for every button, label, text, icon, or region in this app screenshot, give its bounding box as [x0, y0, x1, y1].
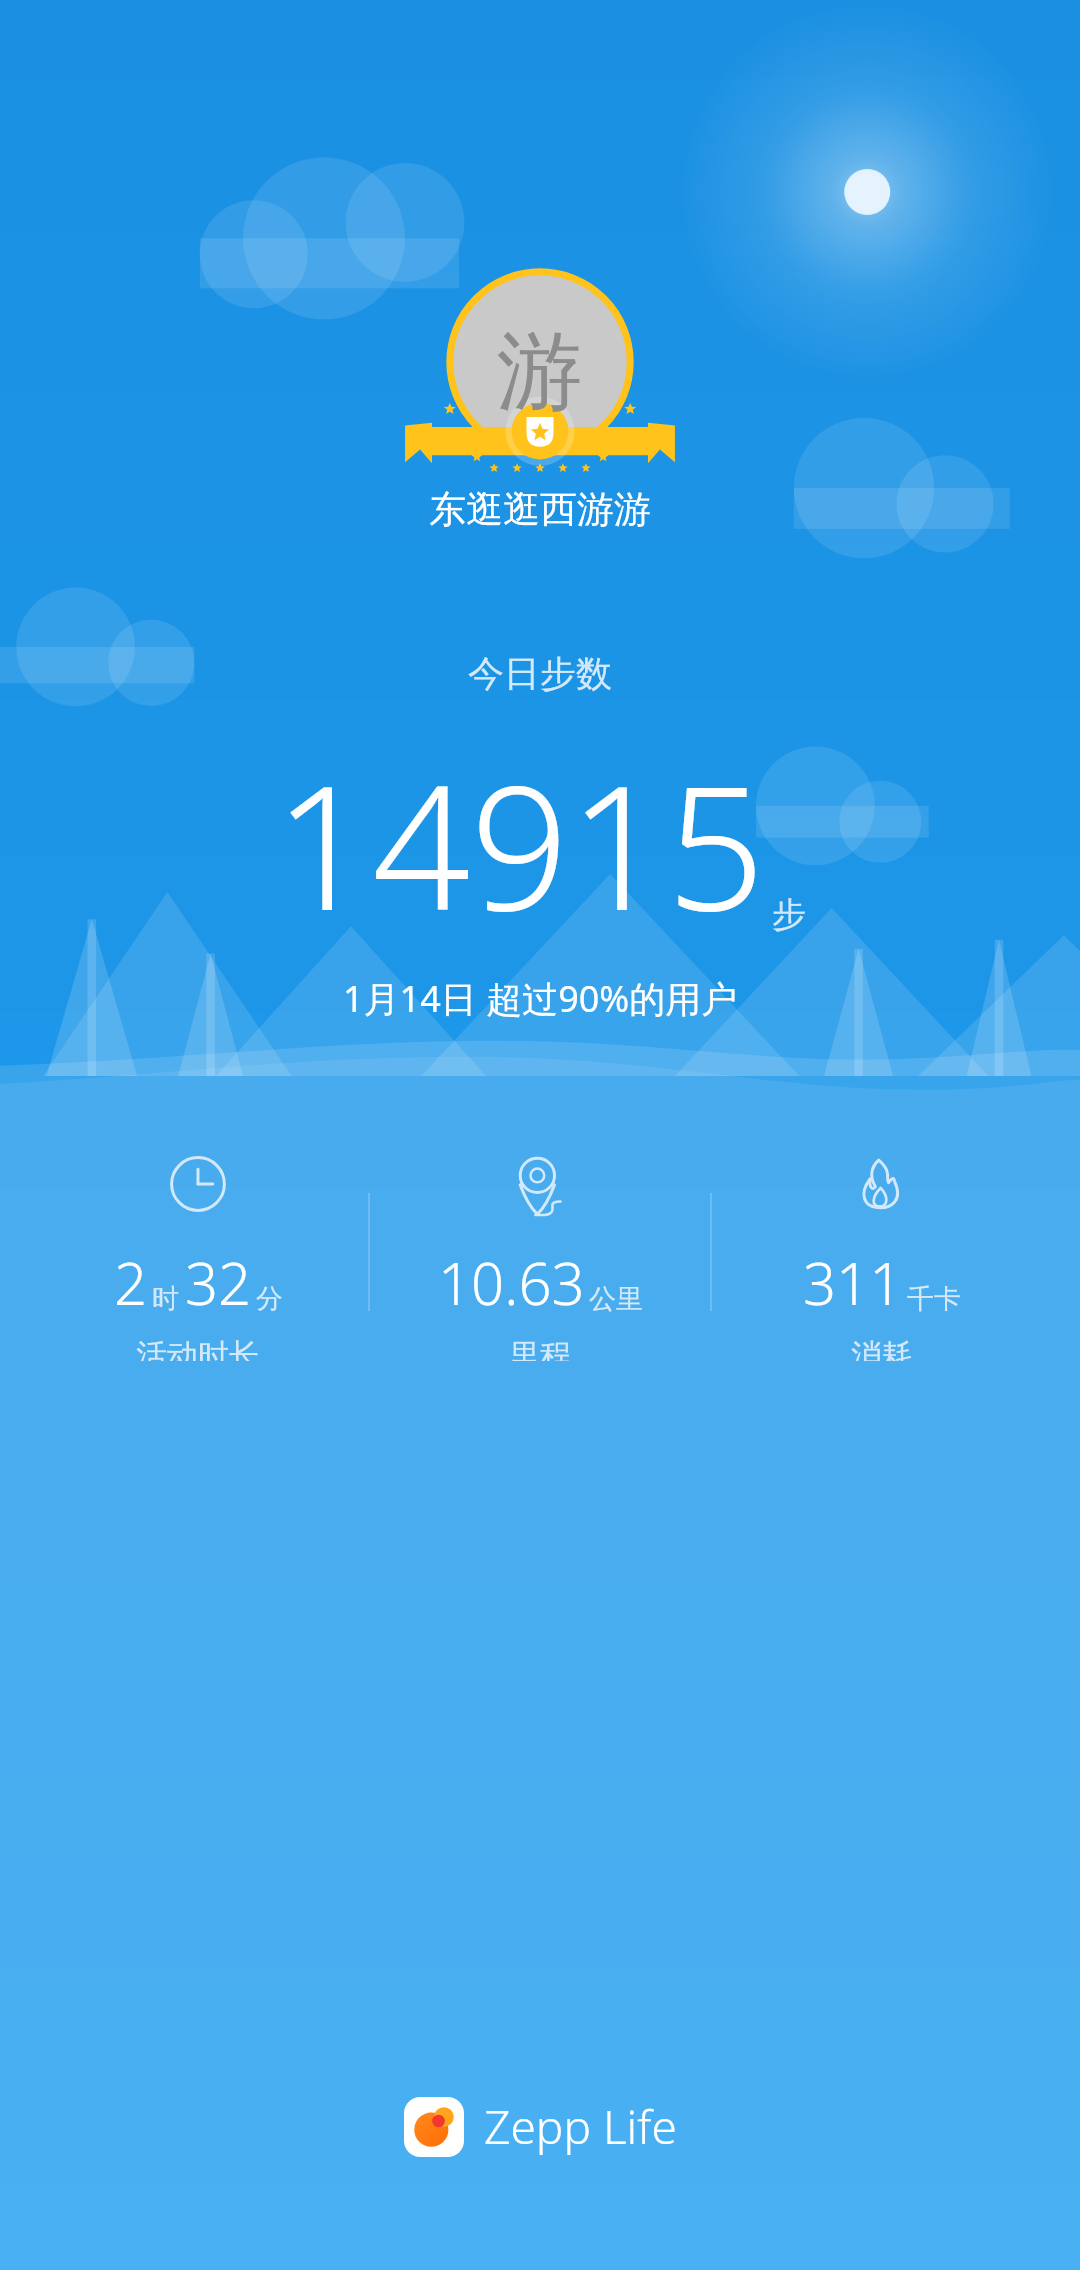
staticText: 游 [497, 318, 583, 426]
other: Zepp Life app icon [404, 2097, 464, 2157]
staticText: Zepp Life [484, 2095, 677, 2158]
button[interactable]: Achievement badge 东逛逛西游游 [405, 272, 675, 472]
staticText: 1月14日 超过90%的用户 [343, 974, 738, 1023]
staticText: 公里 [589, 1282, 643, 1316]
staticText: 步 [772, 893, 806, 936]
staticText: 东逛逛西游游 [429, 486, 651, 533]
staticText: 10.63 [438, 1243, 585, 1322]
button[interactable]: 里程 [370, 1151, 710, 1361]
staticText: 活动时长 [136, 1336, 260, 1361]
staticText: 32 [185, 1243, 252, 1322]
button[interactable]: 消耗 [712, 1151, 1052, 1361]
other: 消耗 [849, 1151, 915, 1217]
button[interactable]: 活动时长 [28, 1151, 368, 1361]
staticText: 千卡 [907, 1282, 961, 1316]
staticText: 14915 [274, 726, 766, 960]
staticText: 里程 [509, 1336, 571, 1361]
staticText: 今日步数 [468, 651, 612, 696]
button[interactable]: Zepp Life app icon [404, 2095, 677, 2158]
staticText: 分 [256, 1282, 283, 1316]
staticText: 时 [152, 1282, 179, 1316]
other: 里程 [507, 1151, 573, 1217]
other: 活动时长 [165, 1151, 231, 1217]
staticText: 消耗 [851, 1336, 913, 1361]
staticText: 311 [803, 1243, 903, 1322]
staticText: 2 [114, 1243, 148, 1322]
